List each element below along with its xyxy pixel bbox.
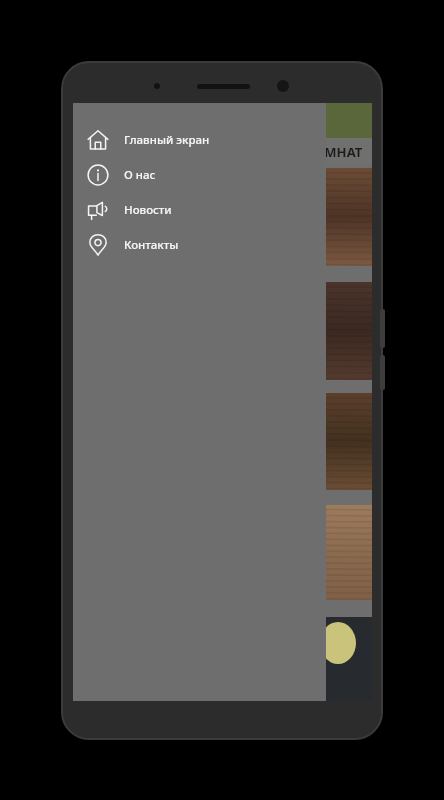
- other: Contacts: [85, 232, 111, 258]
- staticText: МЕЖКОМНАТНЫЕ ДВЕРИ ШКАФЫ: [273, 143, 372, 161]
- other: About: [85, 162, 111, 188]
- staticText: О нас: [124, 167, 156, 183]
- staticText: Новости: [124, 202, 172, 218]
- other: Home: [85, 127, 111, 153]
- button[interactable]: [73, 282, 372, 380]
- button[interactable]: Home: [73, 122, 326, 157]
- button[interactable]: [73, 393, 372, 490]
- button[interactable]: About: [73, 157, 326, 192]
- staticText: Главный экран: [124, 132, 210, 148]
- other: News: [85, 197, 111, 223]
- button[interactable]: [73, 505, 372, 600]
- button[interactable]: [73, 168, 372, 266]
- button[interactable]: News: [73, 192, 326, 227]
- button[interactable]: Contacts: [73, 227, 326, 262]
- staticText: Контакты: [124, 237, 179, 253]
